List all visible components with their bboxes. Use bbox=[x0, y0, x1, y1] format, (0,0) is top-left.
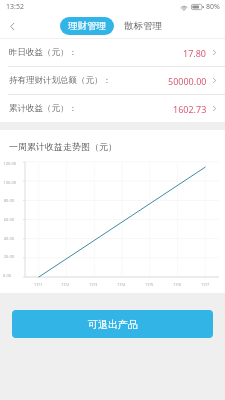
staticText: 1602.73 bbox=[173, 103, 207, 115]
staticText: 散标管理 bbox=[124, 20, 162, 32]
staticText: 17/2 bbox=[61, 282, 70, 287]
staticText: 17/7 bbox=[201, 282, 210, 287]
staticText: 理财管理 bbox=[68, 20, 106, 32]
staticText: 50000.00 bbox=[168, 75, 207, 87]
button[interactable]: Back bbox=[0, 14, 24, 38]
staticText: 20.00 bbox=[3, 254, 14, 258]
staticText: 17.80 bbox=[183, 47, 207, 59]
staticText: 累计收益（元）： bbox=[9, 103, 77, 114]
staticText: 持有理财计划总额（元）： bbox=[9, 75, 111, 86]
staticText: 17/4 bbox=[117, 282, 126, 287]
staticText: 17/3 bbox=[89, 282, 98, 287]
staticText: 60.00 bbox=[3, 217, 14, 221]
staticText: 17/6 bbox=[173, 282, 182, 287]
staticText: 40.00 bbox=[3, 236, 14, 240]
staticText: 80% bbox=[206, 2, 220, 12]
staticText: 可退出产品 bbox=[88, 318, 138, 331]
button[interactable]: 理财管理 bbox=[60, 17, 114, 35]
staticText: 80.00 bbox=[3, 198, 14, 202]
staticText: 17/5 bbox=[145, 282, 154, 287]
staticText: 120.00 bbox=[3, 161, 16, 165]
button[interactable]: 持有理财计划总额（元）： bbox=[0, 67, 225, 94]
button[interactable]: 散标管理 bbox=[121, 17, 165, 35]
button[interactable]: 累计收益（元）： bbox=[0, 95, 225, 122]
staticText: 17/1 bbox=[34, 282, 43, 287]
staticText: 一周累计收益走势图（元） bbox=[9, 141, 117, 152]
staticText: 100.00 bbox=[3, 180, 16, 184]
staticText: 昨日收益（元）： bbox=[9, 47, 77, 58]
button[interactable]: 可退出产品 bbox=[12, 310, 213, 338]
staticText: 13:52 bbox=[6, 2, 24, 12]
staticText: 0.00 bbox=[3, 273, 11, 277]
button[interactable]: 昨日收益（元）： bbox=[0, 39, 225, 66]
